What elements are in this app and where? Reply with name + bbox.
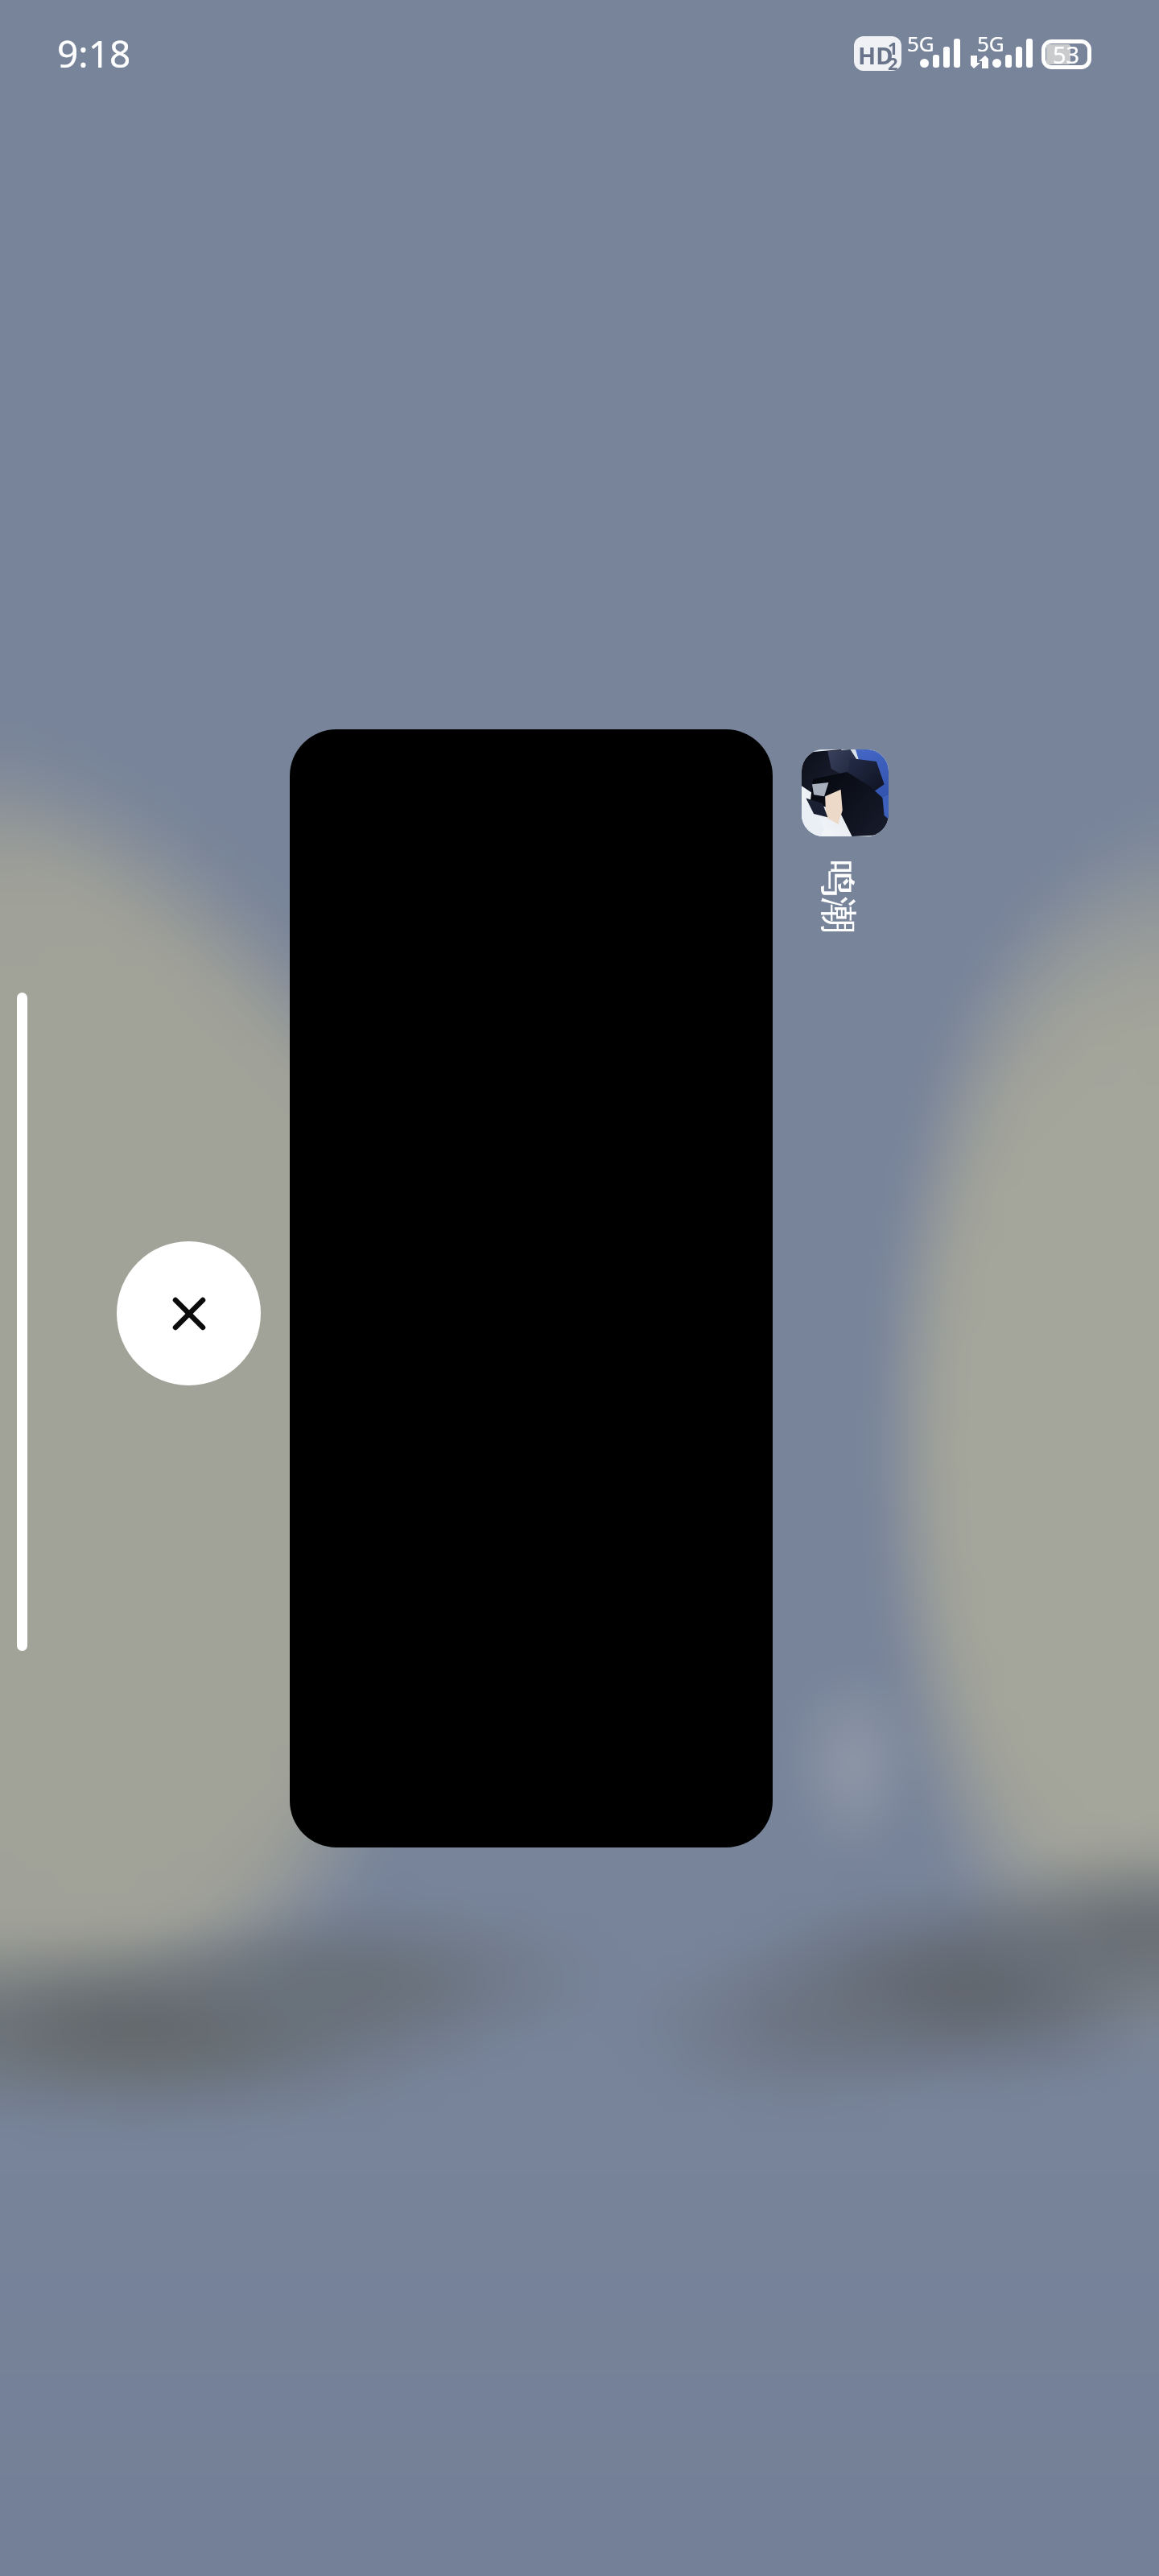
staticText: HD (858, 39, 893, 71)
staticText: 鸣潮 (815, 860, 861, 934)
button[interactable]: Close app (117, 1241, 261, 1385)
button[interactable] (290, 729, 773, 1847)
staticText: 9:18 (57, 28, 131, 79)
button[interactable]: 鸣潮 (794, 844, 881, 949)
staticText: 1 (888, 36, 898, 60)
staticText: 5G (977, 29, 1004, 57)
staticText: 5G (907, 29, 934, 57)
button[interactable]: Back (17, 993, 27, 1651)
staticText: 53 (1053, 39, 1080, 68)
staticText: 2 (888, 51, 898, 71)
button[interactable]: App icon (802, 749, 889, 836)
